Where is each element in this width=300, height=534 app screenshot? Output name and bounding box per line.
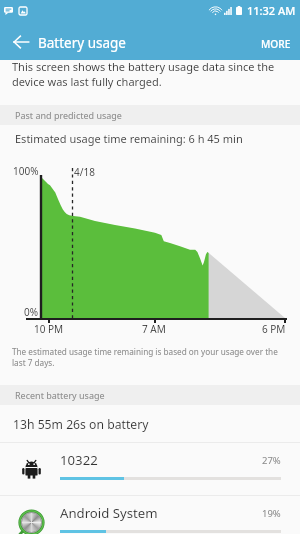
button[interactable]: 10322 [0, 443, 300, 495]
staticText: 6 PM [262, 322, 286, 336]
staticText: 11:32 AM [247, 3, 296, 18]
staticText: Past and predicted usage [15, 109, 122, 121]
button[interactable]: Android System [0, 496, 300, 534]
staticText: This screen shows the battery usage data… [12, 59, 290, 89]
staticText: 19% [262, 507, 281, 520]
staticText: Android System [60, 504, 158, 522]
staticText: The estimated usage time remaining is ba… [12, 346, 292, 369]
staticText: 10322 [60, 451, 98, 469]
staticText: Estimated usage time remaining: 6 h 45 m… [15, 131, 243, 146]
staticText: 7 AM [142, 322, 166, 336]
staticText: 13h 55m 26s on battery [13, 416, 149, 433]
staticText: Battery usage [38, 34, 126, 52]
button[interactable]: MORE [249, 21, 300, 60]
staticText: MORE [261, 37, 291, 51]
staticText: 0% [24, 305, 39, 319]
staticText: 27% [262, 454, 281, 467]
staticText: 10 PM [34, 322, 64, 336]
staticText: 4/18 [74, 165, 95, 179]
button[interactable]: Navigate up [0, 21, 38, 60]
staticText: 100% [13, 164, 39, 178]
staticText: Recent battery usage [15, 389, 105, 401]
